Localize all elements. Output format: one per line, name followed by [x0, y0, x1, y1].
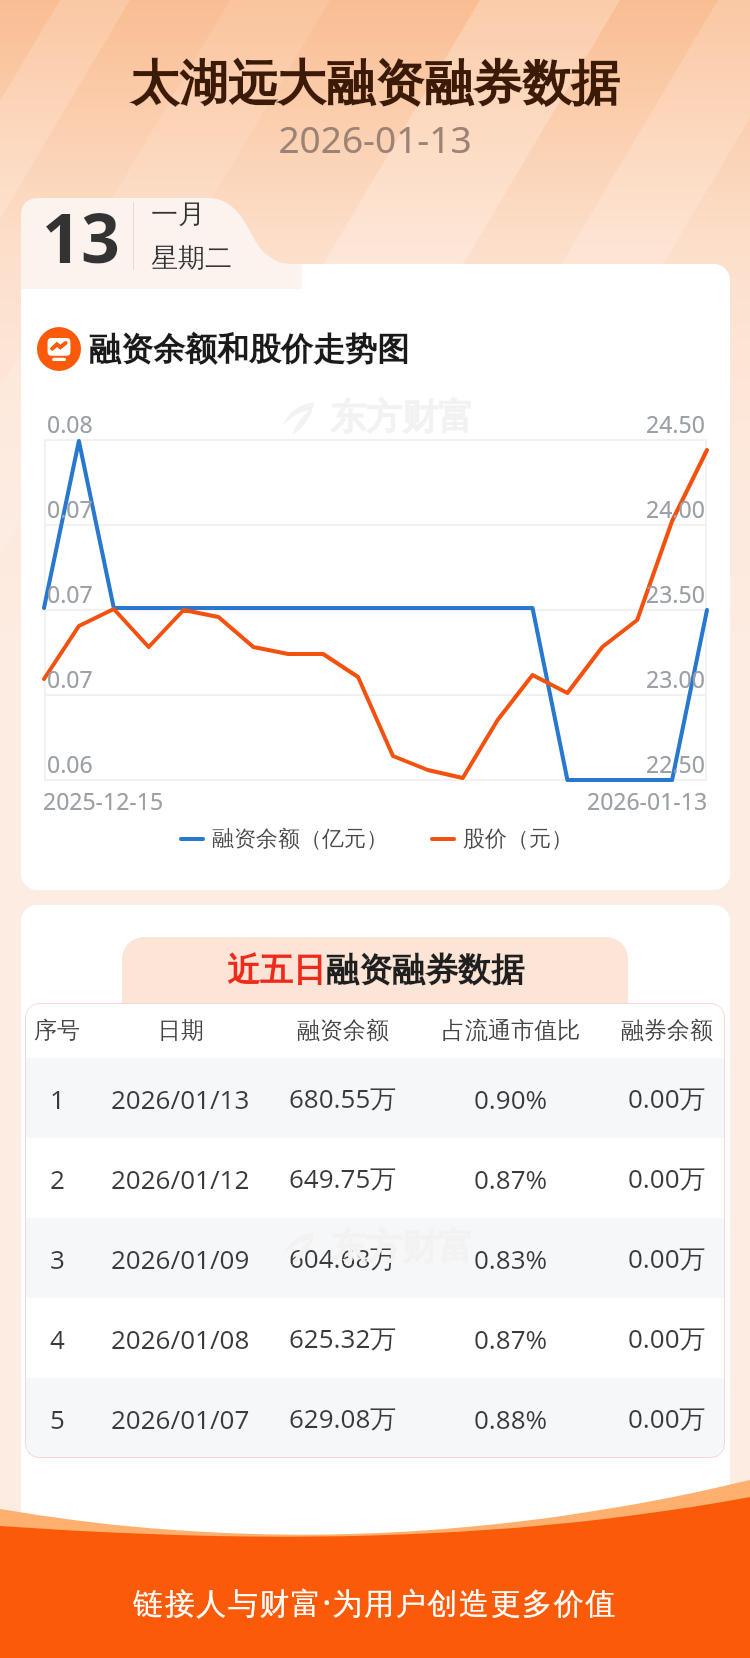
staticText: 625.32万	[289, 1320, 397, 1356]
staticText: 融资融券数据	[326, 949, 524, 991]
staticText: 一月	[151, 197, 205, 231]
staticText: 23.00	[646, 663, 705, 694]
staticText: 649.75万	[289, 1160, 397, 1196]
staticText: 日期	[158, 1016, 204, 1045]
button[interactable]: 2	[25, 1138, 725, 1218]
staticText: 股价（元）	[463, 825, 573, 853]
staticText: 604.68万	[289, 1240, 397, 1276]
staticText: 629.08万	[289, 1400, 397, 1436]
staticText: 0.00万	[628, 1320, 706, 1356]
staticText: 2026/01/12	[111, 1161, 250, 1196]
staticText: 0.87%	[474, 1321, 548, 1356]
staticText: 0.00万	[628, 1400, 706, 1436]
staticText: 0.06	[47, 748, 93, 779]
staticText: 0.00万	[628, 1080, 706, 1116]
other: 走势图	[37, 327, 81, 371]
staticText: 0.87%	[474, 1161, 548, 1196]
staticText: 22.50	[646, 748, 705, 779]
staticText: 2026/01/08	[111, 1321, 250, 1356]
staticText: 0.90%	[474, 1081, 548, 1116]
staticText: 3	[50, 1241, 65, 1276]
staticText: 24.00	[646, 493, 705, 524]
staticText: 0.88%	[474, 1401, 548, 1436]
staticText: 0.00万	[628, 1240, 706, 1276]
button[interactable]: 3	[25, 1218, 725, 1298]
staticText: 2026/01/13	[111, 1081, 250, 1116]
staticText: 近五日	[227, 949, 326, 991]
button[interactable]: 4	[25, 1298, 725, 1378]
staticText: 2026-01-13	[587, 785, 708, 816]
staticText: 链接人与财富·为用户创造更多价值	[0, 1582, 750, 1623]
staticText: 0.07	[47, 663, 93, 694]
staticText: 0.00万	[628, 1160, 706, 1196]
staticText: 13	[42, 190, 120, 281]
staticText: 2026/01/07	[111, 1401, 250, 1436]
staticText: 4	[50, 1321, 65, 1356]
staticText: 1	[50, 1081, 65, 1116]
staticText: 融资余额（亿元）	[212, 825, 388, 853]
staticText: 东方财富	[330, 394, 474, 439]
staticText: 680.55万	[289, 1080, 397, 1116]
staticText: 24.50	[646, 408, 705, 439]
staticText: 5	[50, 1401, 65, 1436]
staticText: 2026/01/09	[111, 1241, 250, 1276]
staticText: 2026-01-13	[0, 113, 750, 163]
staticText: 0.07	[47, 578, 93, 609]
staticText: 0.83%	[474, 1241, 548, 1276]
staticText: 融资余额	[297, 1016, 389, 1045]
staticText: 融券余额	[621, 1016, 713, 1045]
button[interactable]: 5	[25, 1378, 725, 1458]
staticText: 0.08	[47, 408, 93, 439]
staticText: 太湖远大融资融券数据	[0, 53, 750, 115]
button[interactable]: 1	[25, 1058, 725, 1138]
staticText: 2	[50, 1161, 65, 1196]
staticText: 0.07	[47, 493, 93, 524]
staticText: 2025-12-15	[43, 785, 164, 816]
staticText: 23.50	[646, 578, 705, 609]
staticText: 东方财富	[330, 1224, 474, 1269]
staticText: 占流通市值比	[442, 1016, 580, 1045]
staticText: 序号	[34, 1016, 80, 1045]
staticText: 星期二	[151, 241, 232, 275]
staticText: 融资余额和股价走势图	[89, 329, 409, 369]
